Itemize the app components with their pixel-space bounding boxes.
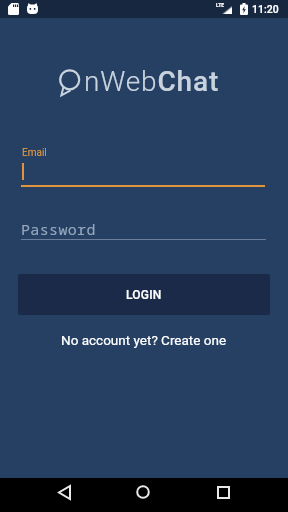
button[interactable] xyxy=(203,478,243,512)
staticText: LOGIN xyxy=(126,288,162,302)
staticText: Password xyxy=(21,219,96,239)
staticText: No account yet? Create one xyxy=(61,332,227,348)
button[interactable]: LOGIN xyxy=(18,274,270,315)
staticText: Email xyxy=(22,147,47,159)
button[interactable]: No account yet? Create one xyxy=(0,330,288,350)
button[interactable] xyxy=(123,478,163,512)
staticText: nWebChat xyxy=(84,65,220,98)
staticText: 11:20 xyxy=(252,3,279,15)
button[interactable]: Password xyxy=(14,215,274,245)
button[interactable]: Email xyxy=(14,140,274,190)
staticText: LTE xyxy=(216,2,225,8)
button[interactable] xyxy=(44,478,84,512)
